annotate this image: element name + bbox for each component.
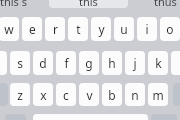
button[interactable]: d bbox=[33, 51, 53, 75]
staticText: this s bbox=[0, 0, 28, 9]
button[interactable]: j bbox=[125, 51, 145, 75]
button[interactable]: w bbox=[0, 17, 19, 41]
staticText: v bbox=[86, 87, 93, 103]
staticText: i bbox=[145, 21, 149, 37]
button[interactable]: s bbox=[10, 51, 30, 75]
button[interactable]: b bbox=[102, 83, 122, 106]
staticText: this bbox=[79, 0, 98, 9]
button[interactable]: m bbox=[148, 83, 168, 106]
button[interactable]: r bbox=[45, 17, 65, 41]
button[interactable]: h bbox=[102, 51, 122, 75]
button[interactable]: t bbox=[68, 17, 88, 41]
staticText: z bbox=[17, 87, 23, 103]
button[interactable]: c bbox=[56, 83, 76, 106]
staticText: j bbox=[133, 55, 137, 71]
button[interactable] bbox=[33, 114, 148, 120]
staticText: f bbox=[64, 55, 69, 71]
button[interactable]: g bbox=[79, 51, 99, 75]
button[interactable]: v bbox=[79, 83, 99, 106]
button[interactable] bbox=[49, 0, 128, 8]
button[interactable]: l bbox=[171, 51, 180, 75]
staticText: x bbox=[40, 87, 47, 103]
staticText: t bbox=[76, 21, 81, 37]
staticText: w bbox=[4, 21, 14, 37]
button[interactable]: z bbox=[10, 83, 30, 106]
staticText: b bbox=[108, 87, 116, 103]
button[interactable]: o bbox=[160, 17, 180, 41]
staticText: thus bbox=[154, 0, 177, 9]
button[interactable]: x bbox=[33, 83, 53, 106]
staticText: n bbox=[131, 87, 139, 103]
staticText: m bbox=[152, 87, 164, 103]
staticText: c bbox=[63, 87, 69, 103]
staticText: o bbox=[166, 21, 174, 37]
staticText: u bbox=[120, 21, 128, 37]
button[interactable]: e bbox=[22, 17, 42, 41]
staticText: s bbox=[17, 55, 23, 71]
button[interactable]: f bbox=[56, 51, 76, 75]
button[interactable]: u bbox=[114, 17, 134, 41]
staticText: r bbox=[53, 21, 58, 37]
staticText: k bbox=[155, 55, 162, 71]
button[interactable]: k bbox=[148, 51, 168, 75]
button[interactable]: n bbox=[125, 83, 145, 106]
button[interactable]: i bbox=[137, 17, 157, 41]
staticText: h bbox=[108, 55, 116, 71]
staticText: e bbox=[29, 21, 36, 37]
button[interactable]: a bbox=[0, 51, 7, 75]
staticText: g bbox=[85, 55, 93, 71]
staticText: d bbox=[39, 55, 47, 71]
button[interactable]: y bbox=[91, 17, 111, 41]
staticText: y bbox=[98, 21, 105, 37]
